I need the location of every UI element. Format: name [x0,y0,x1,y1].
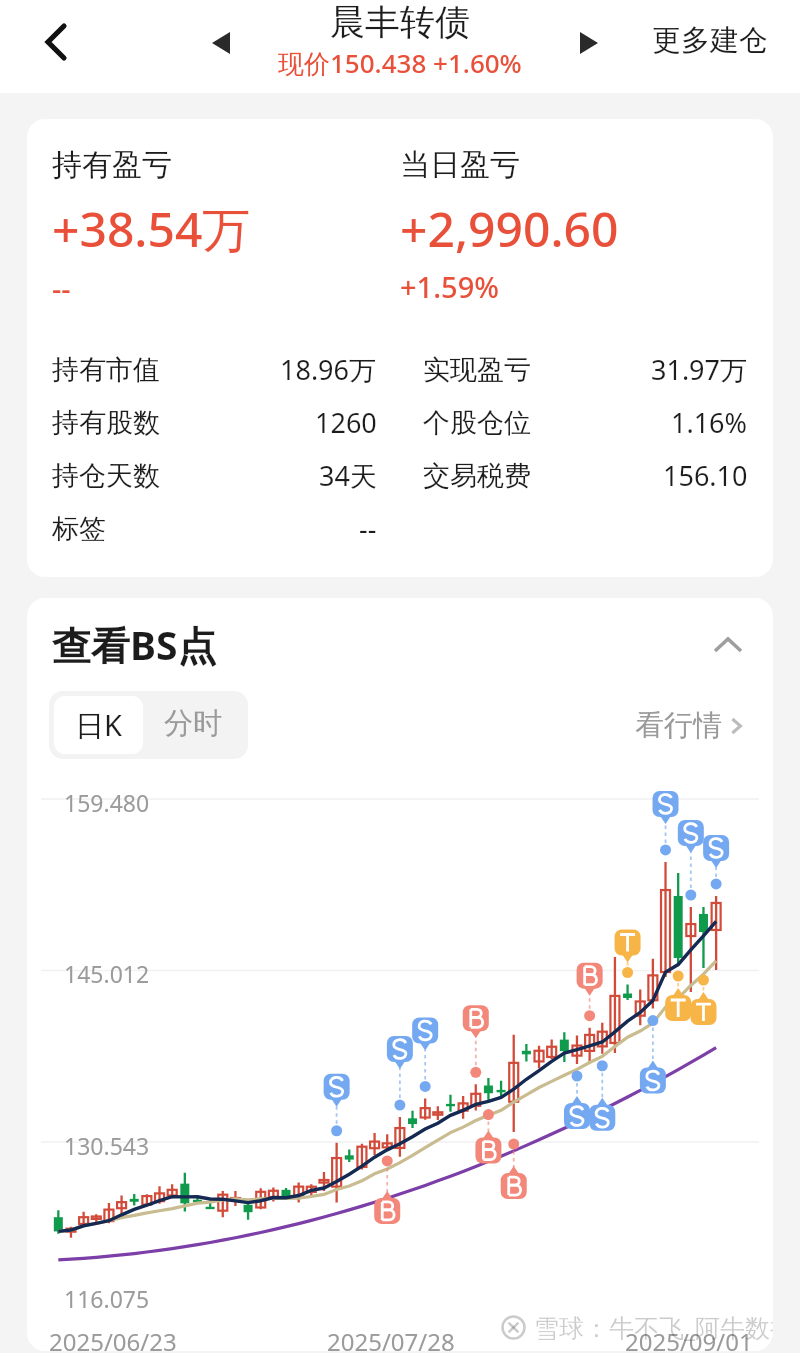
staticText: 分时 [164,705,222,742]
button[interactable]: 看行情 [629,699,751,752]
staticText: 更多建仓 [652,22,768,59]
staticText: 1.16% [671,404,748,441]
staticText: 交易税费 [423,459,531,493]
staticText: 持有股数 [52,406,160,440]
button[interactable]: Previous [193,15,249,71]
staticText: 持仓天数 [52,459,160,493]
button[interactable]: 日K [54,696,143,754]
staticText: 130.543 [64,1130,150,1161]
staticText: 1260 [315,404,377,441]
staticText: 持有市值 [52,353,160,387]
staticText: -- [52,268,71,307]
staticText: 145.012 [64,958,150,989]
staticText: 雪球：牛不飞_阿牛数据 [534,1310,773,1344]
staticText: 156.10 [663,457,748,494]
staticText: 晨丰转债 [330,0,470,44]
staticText: +2,990.60 [400,196,619,261]
staticText: 现价150.438 +1.60% [278,45,522,80]
staticText: 当日盈亏 [400,146,520,184]
staticText: 实现盈亏 [423,353,531,387]
staticText: 159.480 [64,787,150,818]
staticText: 31.97万 [651,351,748,388]
staticText: 标签 [52,512,106,546]
staticText: 个股仓位 [423,406,531,440]
button[interactable]: 更多建仓 [644,12,776,69]
staticText: 看行情 [635,707,722,744]
staticText: 2025/07/28 [327,1325,455,1351]
button[interactable]: Next [561,15,617,71]
button[interactable]: Collapse [705,622,751,668]
staticText: 116.075 [64,1283,150,1314]
staticText: 18.96万 [280,351,377,388]
staticText: +1.59% [400,267,499,306]
button[interactable]: Back [22,8,90,76]
staticText: -- [359,510,377,547]
staticText: 34天 [319,457,377,494]
staticText: 查看BS点 [52,618,217,671]
button[interactable]: 分时 [143,696,243,751]
staticText: 2025/09/01 [625,1325,753,1351]
staticText: 2025/06/23 [49,1325,177,1351]
staticText: 持有盈亏 [52,146,172,184]
staticText: +38.54万 [52,196,251,262]
staticText: 日K [75,705,122,745]
